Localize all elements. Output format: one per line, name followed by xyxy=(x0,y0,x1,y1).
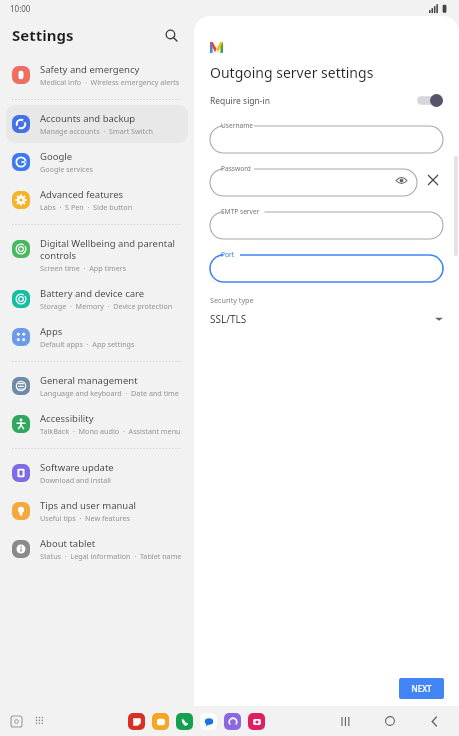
button[interactable]: Home xyxy=(379,710,401,732)
staticText: Screen time · App timers xyxy=(40,263,127,273)
staticText: Medical info · Wireless emergency alerts xyxy=(40,77,180,87)
staticText: Settings xyxy=(12,25,74,45)
staticText: Google xyxy=(40,150,73,163)
button[interactable]: Tips and user manual xyxy=(6,492,188,530)
staticText: SSL/TLS xyxy=(210,312,247,326)
staticText: Require sign-in xyxy=(210,95,271,107)
staticText: SMTP server xyxy=(221,207,260,216)
staticText: Default apps · App settings xyxy=(40,339,135,349)
button[interactable]: Software update xyxy=(6,454,188,492)
button[interactable]: App 5 xyxy=(248,713,265,730)
staticText: Storage · Memory · Device protection xyxy=(40,301,173,311)
staticText: About tablet xyxy=(40,537,96,550)
staticText: Outgoing server settings xyxy=(210,63,374,82)
button[interactable]: App 1 xyxy=(152,713,169,730)
button[interactable]: Accessibility xyxy=(6,405,188,443)
staticText: Status · Legal information · Tablet name xyxy=(40,551,182,561)
button[interactable]: App 3 xyxy=(200,713,217,730)
button[interactable]: Password xyxy=(210,164,417,196)
button[interactable]: Apps xyxy=(6,318,188,356)
button[interactable]: NEXT xyxy=(399,678,444,699)
staticText: Port xyxy=(221,250,235,259)
button[interactable]: Digital Wellbeing and parental controls xyxy=(6,230,188,280)
staticText: Security type xyxy=(210,295,254,305)
button[interactable]: About tablet xyxy=(6,530,188,568)
staticText: Apps xyxy=(40,325,63,338)
button[interactable]: Clear xyxy=(423,170,443,190)
staticText: Labs · S Pen · Side button xyxy=(40,202,133,212)
button[interactable]: All apps xyxy=(30,711,50,731)
staticText: Download and install xyxy=(40,475,111,485)
staticText: Accessibility xyxy=(40,412,94,425)
staticText: TalkBack · Mono audio · Assistant menu xyxy=(40,426,181,436)
staticText: Software update xyxy=(40,461,114,474)
button[interactable]: Search xyxy=(158,22,184,48)
button[interactable]: Battery and device care xyxy=(6,280,188,318)
staticText: Google services xyxy=(40,164,94,174)
staticText: Battery and device care xyxy=(40,287,145,300)
button[interactable]: SSL/TLS xyxy=(210,312,443,326)
staticText: General management xyxy=(40,374,138,387)
button[interactable]: Back xyxy=(423,710,445,732)
staticText: Language and keyboard · Date and time xyxy=(40,388,179,398)
button[interactable]: SMTP server xyxy=(210,207,443,239)
button[interactable]: App 2 xyxy=(176,713,193,730)
button[interactable]: App 4 xyxy=(224,713,241,730)
staticText: Tips and user manual xyxy=(40,499,137,512)
staticText: Password xyxy=(221,164,251,173)
button[interactable]: Accounts and backup xyxy=(6,105,188,143)
staticText: Safety and emergency xyxy=(40,63,140,76)
staticText: Useful tips · New features xyxy=(40,513,130,523)
button[interactable]: Recents xyxy=(6,711,26,731)
button[interactable]: Username xyxy=(210,121,443,153)
staticText: Username xyxy=(221,121,254,130)
button[interactable]: Google xyxy=(6,143,188,181)
button[interactable]: Advanced features xyxy=(6,181,188,219)
staticText: Digital Wellbeing and parental controls xyxy=(40,237,182,262)
button[interactable]: Port xyxy=(210,250,443,282)
staticText: Advanced features xyxy=(40,188,124,201)
button[interactable]: General management xyxy=(6,367,188,405)
button[interactable]: App 0 xyxy=(128,713,145,730)
button[interactable]: Require sign-in toggle xyxy=(417,94,443,107)
button[interactable]: Show password xyxy=(393,172,409,188)
staticText: NEXT xyxy=(411,683,432,694)
staticText: 10:00 xyxy=(10,3,31,14)
staticText: Accounts and backup xyxy=(40,112,136,125)
button[interactable]: Safety and emergency xyxy=(6,56,188,94)
button[interactable]: Recent apps xyxy=(335,710,357,732)
staticText: Manage accounts · Smart Switch xyxy=(40,126,154,136)
button[interactable]: Require sign-in xyxy=(210,94,443,107)
